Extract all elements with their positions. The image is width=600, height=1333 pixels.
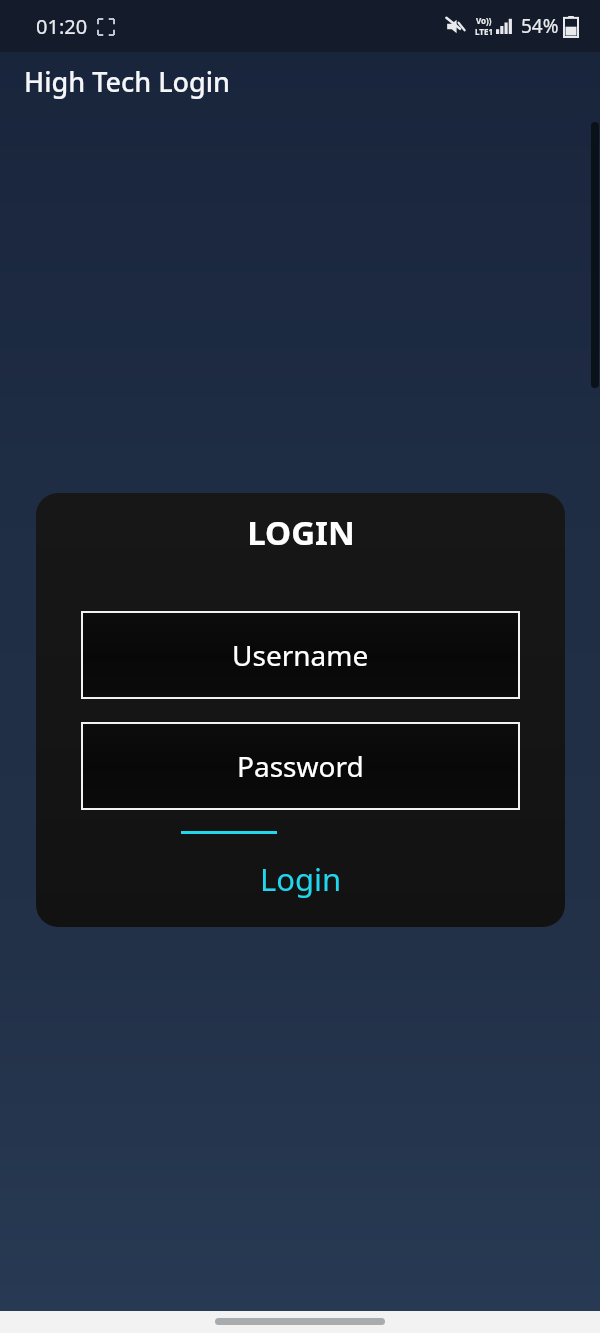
staticText: Username (232, 636, 369, 674)
staticText: Login (260, 858, 342, 900)
staticText: 01:20 (36, 13, 88, 40)
button[interactable]: Username (81, 611, 520, 699)
staticText: High Tech Login (24, 63, 231, 100)
staticText: LOGIN (247, 510, 355, 555)
button[interactable]: Login (240, 854, 362, 904)
staticText: 54% (521, 13, 559, 39)
staticText: LTE1 (475, 26, 493, 37)
button[interactable]: Password (81, 722, 520, 810)
staticText: Password (237, 747, 364, 785)
staticText: Vo)) (476, 15, 492, 26)
